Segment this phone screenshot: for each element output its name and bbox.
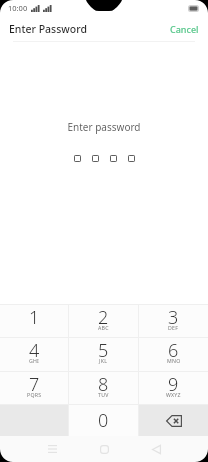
staticText: 2	[98, 305, 109, 330]
button[interactable]: 2	[69, 305, 138, 337]
staticText: 8	[98, 372, 109, 397]
button[interactable]: 8	[69, 372, 138, 404]
staticText: JKL	[99, 357, 108, 364]
button[interactable]: Backspace	[139, 405, 208, 436]
button[interactable]: Cancel	[161, 18, 208, 40]
staticText: ABC	[98, 324, 109, 331]
staticText: GHI	[29, 357, 40, 364]
staticText: 9	[168, 372, 179, 397]
staticText: 6	[168, 338, 179, 363]
staticText: MNO	[167, 357, 181, 364]
staticText: 3	[168, 305, 179, 330]
button[interactable]: 5	[69, 338, 138, 371]
staticText: 1	[29, 305, 40, 330]
button[interactable]: 7	[0, 372, 68, 404]
staticText: 5	[98, 338, 109, 363]
button[interactable]: 1	[0, 305, 68, 337]
button[interactable]: Recent apps	[26, 436, 78, 462]
staticText: TUV	[98, 391, 109, 398]
button[interactable]: 6	[139, 338, 208, 371]
staticText: DEF	[168, 324, 179, 331]
staticText: Cancel	[170, 23, 199, 35]
button[interactable]: 0	[69, 405, 138, 436]
button[interactable]: Back	[130, 436, 182, 462]
button[interactable]: 3	[139, 305, 208, 337]
staticText: 10:00	[8, 3, 28, 13]
staticText: 4	[29, 338, 40, 363]
staticText: Enter Password	[9, 22, 87, 36]
staticText: PQRS	[27, 391, 42, 398]
button[interactable]: 9	[139, 372, 208, 404]
button[interactable]: Home	[78, 436, 130, 462]
staticText: WXYZ	[166, 391, 181, 398]
staticText: Enter password	[67, 120, 141, 134]
staticText: 0	[98, 408, 109, 433]
button[interactable]: 4	[0, 338, 68, 371]
staticText: 7	[29, 372, 40, 397]
